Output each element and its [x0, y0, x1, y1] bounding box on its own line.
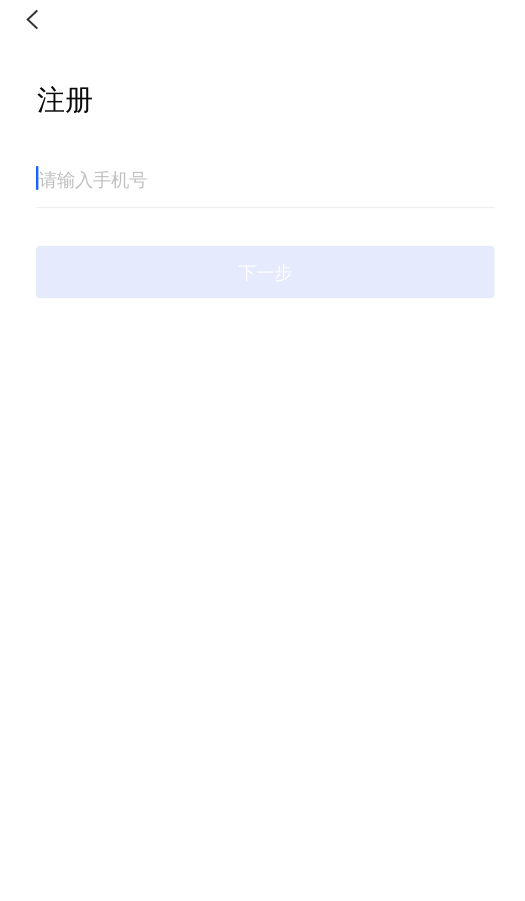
button[interactable]: Back: [10, 0, 54, 41]
staticText: 请输入手机号: [39, 168, 147, 192]
staticText: 注册: [37, 82, 93, 118]
button[interactable]: 请输入手机号: [36, 160, 494, 208]
staticText: 下一步: [238, 262, 292, 284]
